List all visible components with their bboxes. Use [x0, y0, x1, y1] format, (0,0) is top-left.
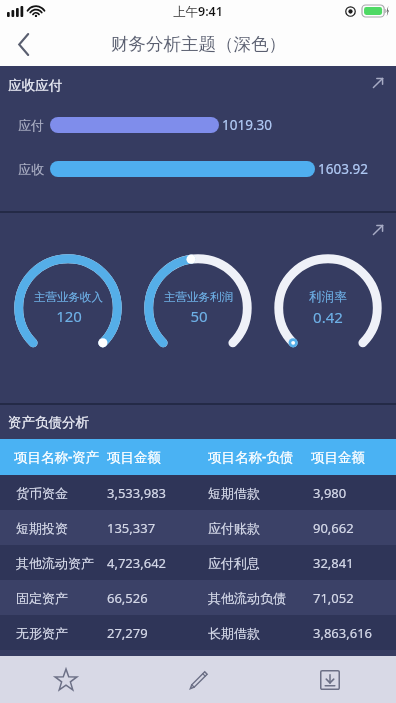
staticText: 财务分析主题（深色）: [111, 33, 286, 55]
button[interactable]: Expand: [362, 217, 394, 243]
staticText: 90,662: [313, 519, 354, 537]
staticText: 50: [190, 306, 208, 326]
staticText: 应付: [18, 117, 50, 133]
staticText: 其他流动资产: [16, 555, 94, 571]
staticText: 应收应付: [8, 77, 62, 94]
button[interactable]: 其他流动资产: [0, 545, 396, 580]
staticText: 3,980: [313, 484, 347, 502]
staticText: 利润率: [309, 289, 347, 305]
button[interactable]: Expand: [0, 213, 396, 403]
staticText: 项目名称-资产: [14, 448, 100, 466]
staticText: 66,526: [107, 589, 148, 607]
staticText: 0.42: [313, 307, 343, 327]
staticText: 27,279: [107, 624, 148, 642]
button[interactable]: 资产负债分析: [0, 405, 396, 656]
staticText: 应收: [18, 161, 50, 177]
staticText: 4,723,642: [107, 554, 167, 572]
button[interactable]: Download: [264, 656, 396, 703]
staticText: 应付利息: [208, 555, 260, 571]
staticText: 120: [56, 306, 82, 326]
staticText: 项目金额: [107, 449, 161, 466]
button[interactable]: Favorite: [0, 656, 132, 703]
staticText: 1603.92: [318, 160, 368, 178]
button[interactable]: 无形资产: [0, 615, 396, 650]
button[interactable]: Edit: [132, 656, 264, 703]
button[interactable]: Expand: [362, 70, 394, 96]
staticText: 资产负债分析: [8, 414, 89, 431]
staticText: 短期投资: [16, 520, 68, 536]
staticText: 71,052: [313, 589, 354, 607]
staticText: 上午9:41: [173, 3, 223, 20]
staticText: 短期借款: [208, 485, 260, 501]
staticText: 主营业务收入: [34, 290, 103, 304]
button[interactable]: 短期投资: [0, 510, 396, 545]
staticText: 135,337: [107, 519, 156, 537]
staticText: 固定资产: [16, 590, 68, 606]
staticText: 3,533,983: [107, 484, 167, 502]
staticText: 无形资产: [16, 625, 68, 641]
button[interactable]: 应收应付: [0, 66, 396, 211]
staticText: 3,863,616: [313, 624, 373, 642]
button[interactable]: 货币资金: [0, 475, 396, 510]
staticText: 其他流动负债: [208, 590, 286, 606]
staticText: 项目名称-负债: [208, 448, 294, 466]
button[interactable]: 固定资产: [0, 580, 396, 615]
staticText: 32,841: [313, 554, 354, 572]
staticText: 项目金额: [311, 449, 365, 466]
staticText: 货币资金: [16, 485, 68, 501]
button[interactable]: Back: [0, 22, 48, 66]
staticText: 主营业务利润: [164, 290, 233, 304]
staticText: 1019.30: [222, 116, 272, 134]
staticText: 长期借款: [208, 625, 260, 641]
staticText: 应付账款: [208, 520, 260, 536]
